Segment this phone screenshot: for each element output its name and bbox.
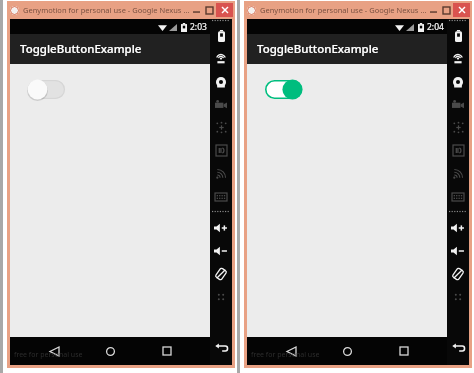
- button[interactable]: Close: [453, 3, 470, 17]
- button[interactable]: Rotate: [210, 262, 232, 285]
- staticText: 2:04: [427, 21, 444, 33]
- button[interactable]: Volume down: [210, 239, 232, 262]
- staticText: Genymotion for personal use - Google Nex…: [260, 5, 427, 15]
- button[interactable]: Home: [97, 338, 123, 364]
- button[interactable]: Screenshot: [447, 285, 469, 308]
- button[interactable]: Maximize: [203, 3, 216, 17]
- button[interactable]: Keyboard: [210, 185, 232, 208]
- staticText: free for personal use: [251, 350, 320, 360]
- button[interactable]: Toggle on: [265, 80, 302, 99]
- button[interactable]: Minimize: [190, 3, 203, 17]
- button[interactable]: Accelerometer: [447, 116, 469, 139]
- button[interactable]: Keyboard: [447, 185, 469, 208]
- staticText: 2:03: [190, 21, 207, 33]
- staticText: ToggleButtonExample: [257, 41, 379, 57]
- button[interactable]: Battery: [447, 24, 469, 47]
- button[interactable]: Volume up: [447, 216, 469, 239]
- button[interactable]: Recent apps: [391, 338, 417, 364]
- button[interactable]: Video: [210, 93, 232, 116]
- button[interactable]: GPS: [210, 47, 232, 70]
- button[interactable]: Rotate: [447, 262, 469, 285]
- button[interactable]: Accelerometer: [210, 116, 232, 139]
- button[interactable]: Network: [210, 162, 232, 185]
- button[interactable]: Back: [41, 338, 67, 364]
- button[interactable]: Back: [210, 336, 232, 359]
- button[interactable]: Volume up: [210, 216, 232, 239]
- button[interactable]: Camera: [210, 70, 232, 93]
- button[interactable]: Home: [334, 338, 360, 364]
- button[interactable]: Identifiers: [447, 139, 469, 162]
- button[interactable]: Battery: [210, 24, 232, 47]
- button[interactable]: Screenshot: [210, 285, 232, 308]
- button[interactable]: Back: [447, 336, 469, 359]
- staticText: free for personal use: [14, 350, 83, 360]
- button[interactable]: Toggle off: [28, 80, 65, 99]
- button[interactable]: Video: [447, 93, 469, 116]
- button[interactable]: Identifiers: [210, 139, 232, 162]
- button[interactable]: Maximize: [440, 3, 453, 17]
- button[interactable]: Minimize: [427, 3, 440, 17]
- button[interactable]: Volume down: [447, 239, 469, 262]
- button[interactable]: GPS: [447, 47, 469, 70]
- button[interactable]: Camera: [447, 70, 469, 93]
- staticText: ToggleButtonExample: [20, 41, 142, 57]
- button[interactable]: Recent apps: [154, 338, 180, 364]
- staticText: Genymotion for personal use - Google Nex…: [23, 5, 190, 15]
- button[interactable]: Back: [278, 338, 304, 364]
- button[interactable]: Close: [216, 3, 233, 17]
- button[interactable]: Network: [447, 162, 469, 185]
